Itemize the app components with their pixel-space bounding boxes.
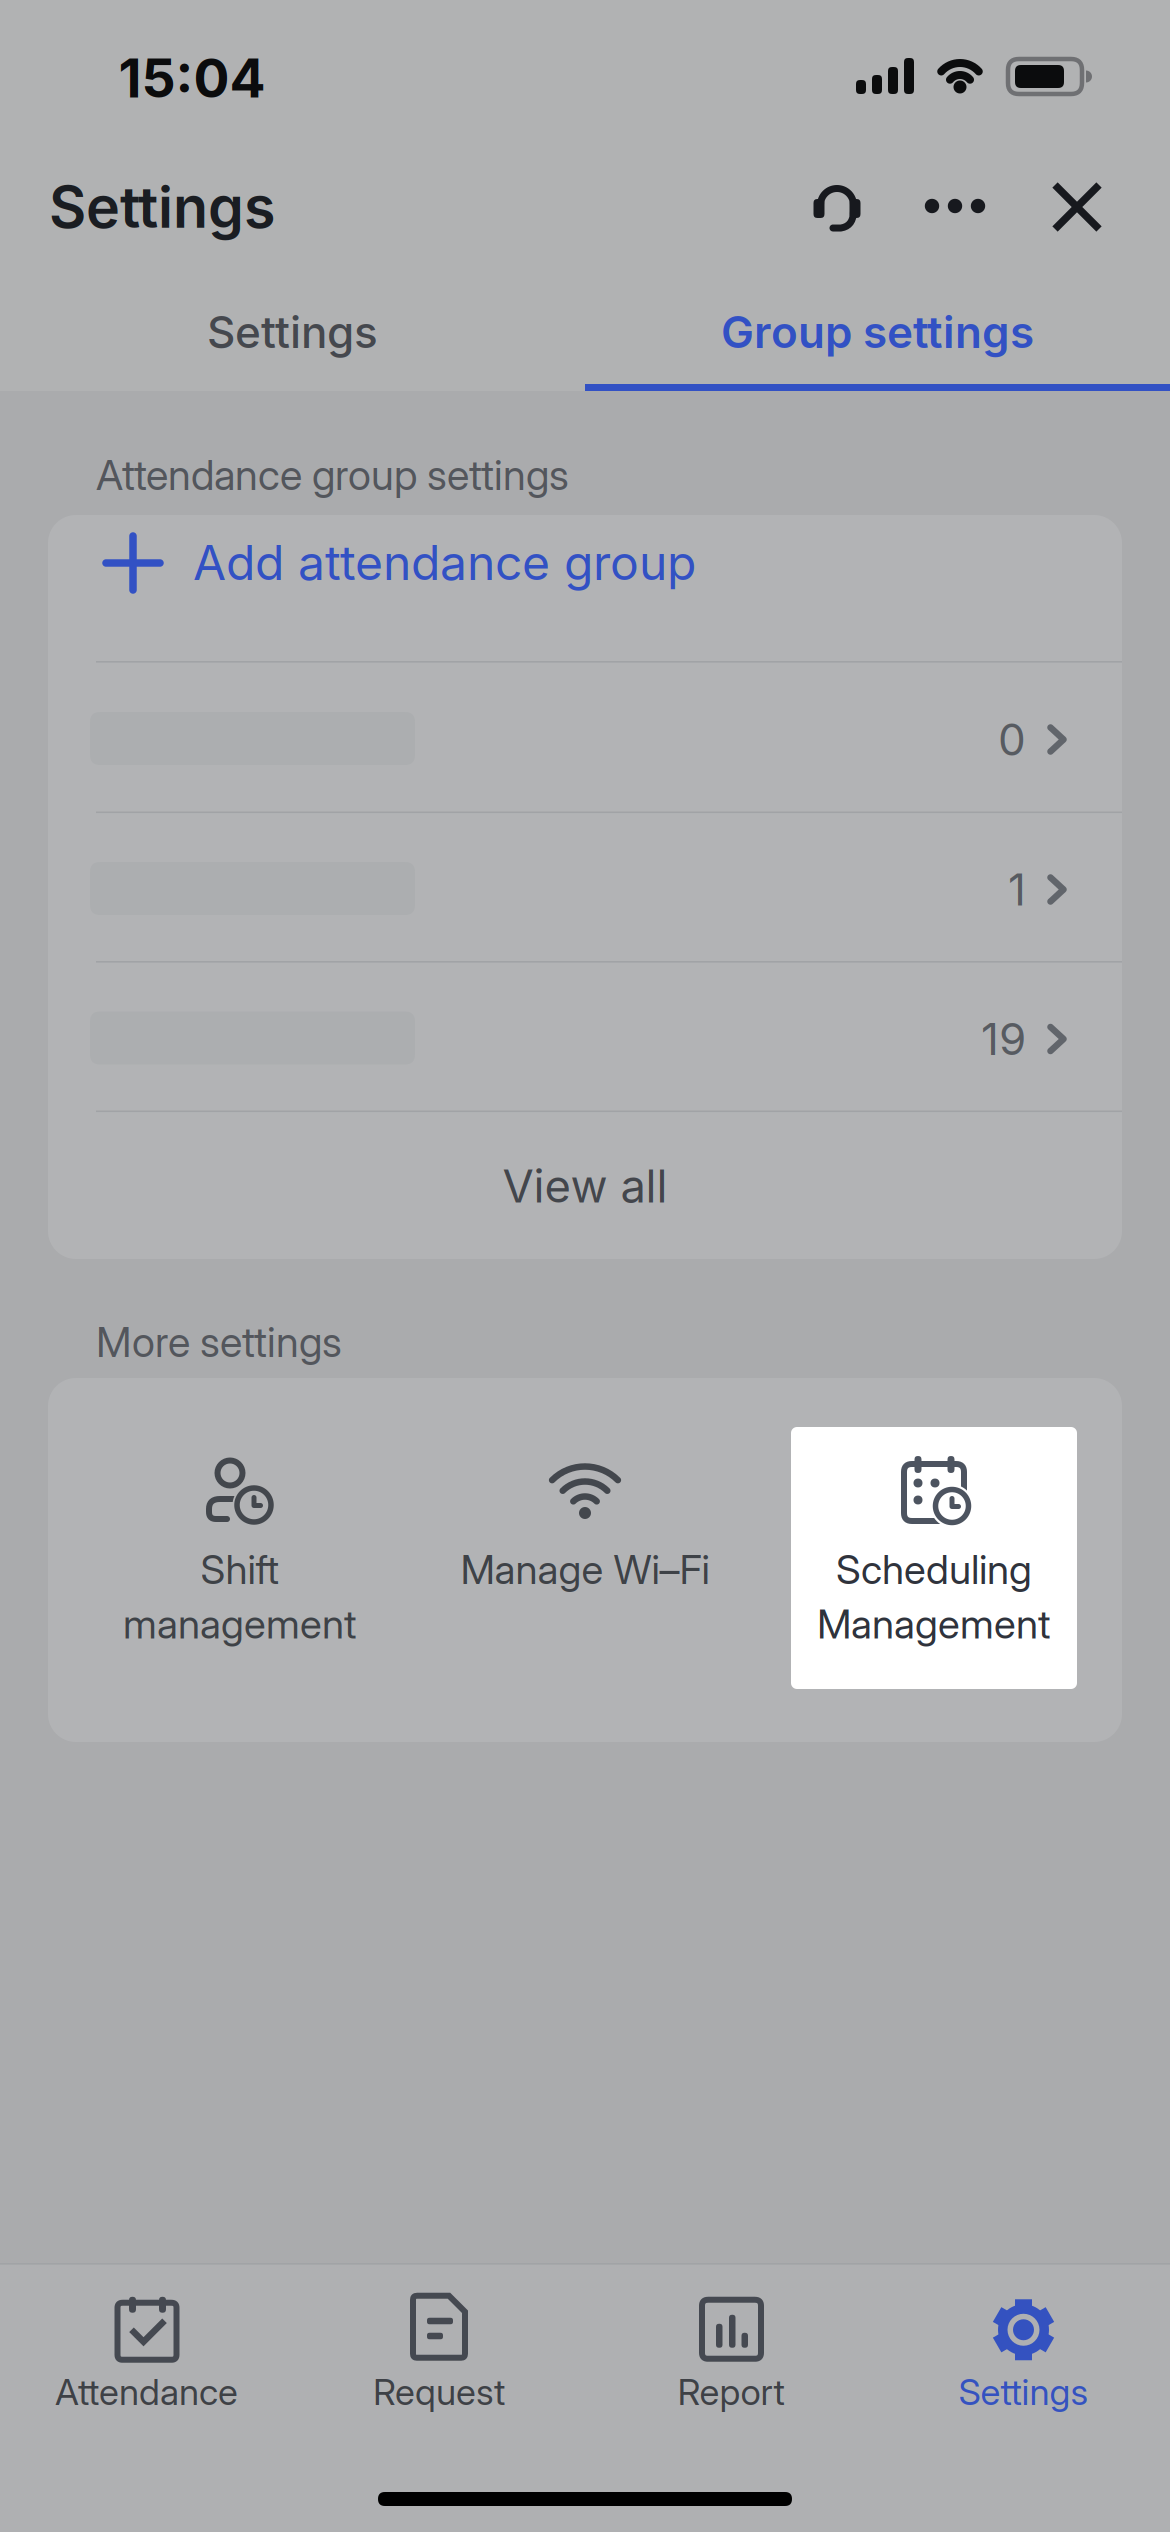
- staticText: Shift: [200, 1546, 279, 1593]
- staticText: 1: [1008, 863, 1026, 915]
- staticText: Scheduling: [836, 1546, 1032, 1593]
- button[interactable]: 0: [48, 662, 1122, 811]
- button[interactable]: 1: [48, 812, 1122, 961]
- staticText: Request: [373, 2371, 505, 2413]
- staticText: 19: [981, 1013, 1026, 1065]
- button[interactable]: Manage Wi–Fi: [420, 1438, 750, 1597]
- staticText: Settings: [958, 2371, 1088, 2413]
- staticText: Group settings: [721, 306, 1034, 358]
- staticText: Attendance: [55, 2371, 238, 2413]
- button[interactable]: Add attendance group: [48, 515, 1122, 662]
- staticText: Report: [677, 2371, 784, 2413]
- button[interactable]: Support: [793, 163, 881, 251]
- button[interactable]: More: [915, 176, 995, 236]
- button[interactable]: Close: [1037, 167, 1117, 247]
- staticText: 15:04: [118, 46, 265, 109]
- button[interactable]: Scheduling: [791, 1427, 1077, 1689]
- button[interactable]: Settings: [877, 2284, 1169, 2414]
- button[interactable]: Report: [585, 2284, 877, 2414]
- staticText: Settings: [49, 173, 275, 241]
- staticText: Add attendance group: [193, 534, 696, 591]
- button[interactable]: 19: [48, 961, 1122, 1110]
- button[interactable]: Attendance: [0, 2284, 292, 2414]
- staticText: management: [123, 1600, 357, 1648]
- staticText: 0: [998, 713, 1026, 765]
- staticText: Attendance group settings: [96, 451, 569, 499]
- button[interactable]: Shift: [75, 1438, 405, 1651]
- button[interactable]: Settings: [0, 277, 585, 387]
- staticText: Manage Wi–Fi: [460, 1546, 709, 1593]
- staticText: View all: [502, 1159, 667, 1213]
- staticText: Settings: [207, 306, 378, 358]
- button[interactable]: Group settings: [585, 277, 1170, 387]
- staticText: More settings: [96, 1318, 342, 1366]
- button[interactable]: Request: [293, 2284, 585, 2414]
- staticText: Management: [817, 1600, 1051, 1648]
- button[interactable]: View all: [48, 1112, 1122, 1259]
